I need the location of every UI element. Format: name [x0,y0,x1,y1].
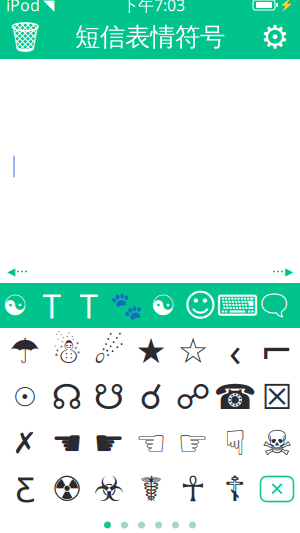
button[interactable]: Yin yang [144,283,181,328]
staticText: ‹ [229,324,241,377]
staticText: ☉ [13,382,37,412]
button[interactable]: Insert symbol [130,374,172,420]
button[interactable]: Insert symbol [88,328,130,374]
button[interactable]: Insert symbol [46,466,88,512]
button[interactable]: Insert symbol [214,420,256,466]
staticText: ◀ [7,265,15,277]
staticText: ☋ [93,377,124,417]
staticText: ☃ [51,331,82,371]
button[interactable]: Insert symbol [172,466,214,512]
staticText: ☣ [93,469,124,509]
button[interactable]: Insert symbol [214,328,256,374]
staticText: ☜ [135,423,166,463]
staticText: ✗ [12,426,37,460]
button[interactable]: Insert symbol [46,328,88,374]
staticText: 🐾 [109,290,142,321]
button[interactable]: Insert symbol [130,420,172,466]
staticText: ☂ [9,331,40,371]
staticText: ☚ [51,423,82,463]
button[interactable]: Insert symbol [172,420,214,466]
staticText: ☠ [261,423,292,463]
button[interactable]: Text style [33,283,70,328]
button[interactable]: Insert symbol [4,374,46,420]
staticText: ☍ [175,377,210,417]
staticText: ☎ [213,377,256,417]
staticText: Ƹ [15,466,35,512]
staticText: ☢ [51,469,82,509]
staticText: ◥ [43,0,54,13]
button[interactable]: Faces [181,283,218,328]
staticText: ☦ [223,469,246,509]
staticText: 下午7:03 [122,0,185,16]
button[interactable]: Insert symbol [214,466,256,512]
staticText: ☤ [139,469,162,509]
staticText: ☊ [51,377,82,417]
staticText: ⌐ [260,328,294,374]
staticText: ⌨ [216,289,258,322]
staticText: 🗑 [6,20,43,54]
staticText: ★ [135,331,166,371]
button[interactable]: Settings [253,15,297,59]
staticText: ⚡ [279,0,294,12]
staticText: ☆ [177,331,208,371]
staticText: T [42,283,61,328]
button[interactable]: Insert symbol [130,328,172,374]
staticText: iPod [6,0,40,16]
staticText: ☯ [150,290,175,321]
button[interactable]: Insert symbol [88,420,130,466]
button[interactable]: Insert symbol [46,374,88,420]
button[interactable]: Animals [107,283,144,328]
button[interactable]: Insert symbol [172,328,214,374]
button[interactable]: Insert symbol [256,420,298,466]
staticText: ☟ [224,423,245,463]
button[interactable]: Insert symbol [46,420,88,466]
staticText: ☒ [261,377,292,417]
staticText: ☄ [93,331,124,371]
button[interactable]: Zodiac [0,283,33,328]
button[interactable]: Messages [255,283,292,328]
button[interactable]: Insert symbol [172,374,214,420]
staticText: ☞ [177,423,208,463]
button[interactable]: Insert symbol [214,374,256,420]
staticText: 🗨 [255,289,292,322]
button[interactable]: Insert symbol [88,466,130,512]
button[interactable]: Delete [256,466,298,512]
button[interactable]: Keyboard [218,283,255,328]
staticText: ⚙ [260,19,289,55]
staticText: ✕ [269,478,285,500]
staticText: T [79,283,98,328]
button[interactable]: Insert symbol [4,466,46,512]
button[interactable]: Insert symbol [256,328,298,374]
button[interactable]: Insert symbol [4,420,46,466]
staticText: ☌ [139,377,162,417]
staticText: ☥ [180,469,206,509]
button[interactable]: Insert symbol [88,374,130,420]
button[interactable]: Text style outline [70,283,107,328]
button[interactable]: Insert symbol [256,374,298,420]
staticText: ▶ [285,265,293,277]
staticText: ☺ [183,287,216,324]
button[interactable]: Clear text [3,15,47,59]
staticText: 短信表情符号 [75,21,225,52]
button[interactable]: Insert symbol [4,328,46,374]
staticText: ☛ [93,423,124,463]
button[interactable]: Insert symbol [130,466,172,512]
staticText: ☯ [2,290,27,321]
